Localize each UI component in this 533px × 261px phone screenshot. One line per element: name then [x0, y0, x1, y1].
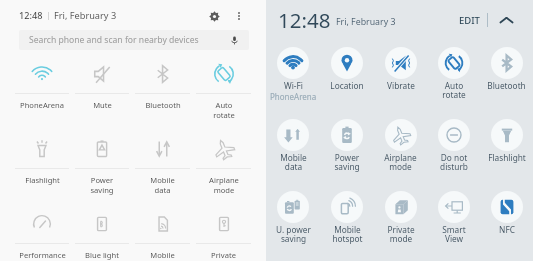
button[interactable]: Power saving — [72, 131, 132, 206]
staticText: Private mode — [387, 224, 415, 245]
button[interactable]: Smart View — [427, 184, 480, 256]
staticText: Mobile hotspot — [332, 224, 363, 245]
staticText: Vibrate — [387, 80, 415, 91]
button[interactable]: Bluetooth — [480, 40, 533, 112]
button[interactable]: EDIT — [457, 10, 482, 31]
staticText: Location — [330, 80, 364, 91]
staticText: Bluetooth — [145, 100, 181, 110]
staticText: Power saving — [334, 152, 360, 173]
button[interactable]: Settings — [206, 8, 222, 24]
button[interactable]: PhoneArena — [12, 56, 72, 131]
staticText: Mobile — [150, 250, 175, 260]
staticText: Search phone and scan for nearby devices — [29, 34, 199, 46]
staticText: U. power saving — [276, 224, 311, 245]
button[interactable]: Bluetooth — [132, 56, 193, 131]
staticText: Blue light — [85, 250, 119, 260]
staticText: Flashlight — [488, 152, 526, 163]
button[interactable]: Location — [320, 40, 374, 112]
staticText: NFC — [499, 224, 515, 235]
staticText: Wi-Fi — [284, 80, 303, 91]
staticText: Fri, February 3 — [54, 9, 117, 22]
staticText: Private — [211, 250, 236, 260]
staticText: Auto rotate — [442, 80, 466, 101]
staticText: Power saving — [90, 175, 114, 195]
button[interactable]: Mute — [72, 56, 132, 131]
button[interactable]: Mobile data — [266, 112, 320, 184]
staticText: Airplane mode — [209, 175, 239, 195]
staticText: Auto rotate — [213, 100, 235, 120]
button[interactable]: Mobile hotspot — [320, 184, 374, 256]
button[interactable]: Search phone and scan for nearby devices — [19, 30, 249, 50]
button[interactable]: Performance — [12, 206, 72, 261]
button[interactable]: Mobile — [132, 206, 193, 261]
staticText: 12:48 — [278, 6, 331, 34]
button[interactable]: Airplane mode — [193, 131, 254, 206]
staticText: Smart View — [442, 224, 466, 245]
button[interactable]: Auto rotate — [193, 56, 254, 131]
button[interactable]: Airplane mode — [374, 112, 427, 184]
button[interactable]: Private mode — [374, 184, 427, 256]
button[interactable]: Power saving — [320, 112, 374, 184]
button[interactable]: Private — [193, 206, 254, 261]
button[interactable]: Vibrate — [374, 40, 427, 112]
button[interactable]: More options — [232, 9, 246, 23]
staticText: Airplane mode — [384, 152, 417, 173]
staticText: Bluetooth — [487, 80, 526, 91]
staticText: Mobile data — [280, 152, 307, 173]
staticText: Performance — [19, 250, 66, 260]
button[interactable]: U. power saving — [266, 184, 320, 256]
staticText: Mobile data — [150, 175, 175, 195]
button[interactable]: Mobile data — [132, 131, 193, 206]
button[interactable]: Collapse panel — [496, 10, 516, 30]
button[interactable]: Do not disturb — [427, 112, 480, 184]
staticText: Do not disturb — [440, 152, 468, 173]
button[interactable]: Blue light — [72, 206, 132, 261]
button[interactable]: Auto rotate — [427, 40, 480, 112]
button[interactable]: Flashlight — [480, 112, 533, 184]
staticText: Flashlight — [25, 175, 60, 185]
button[interactable]: Flashlight — [12, 131, 72, 206]
staticText: PhoneArena — [20, 100, 64, 110]
staticText: EDIT — [459, 14, 480, 27]
staticText: Fri, February 3 — [336, 16, 396, 28]
staticText: PhoneArena — [270, 91, 317, 102]
button[interactable]: Wi-Fi — [266, 40, 320, 112]
staticText: Mute — [93, 100, 112, 110]
button[interactable]: NFC — [480, 184, 533, 256]
staticText: 12:48 — [19, 9, 43, 22]
